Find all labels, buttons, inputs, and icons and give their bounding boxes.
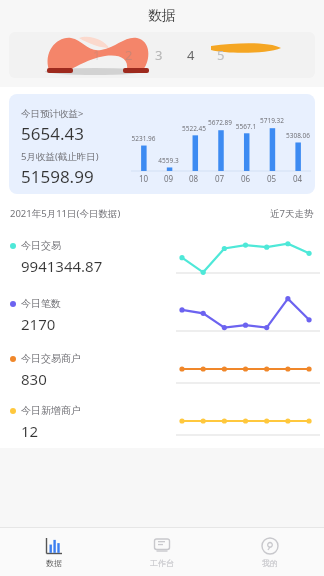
staticText: 4559.3 [156, 156, 181, 165]
staticText: 09 [164, 173, 174, 184]
button[interactable]: 数据 [0, 528, 108, 576]
staticText: 5654.43 [21, 122, 84, 145]
button[interactable]: 今日交易 [0, 228, 324, 286]
staticText: 5672.89 [207, 118, 233, 127]
button[interactable]: 今日新增商户 [0, 396, 324, 448]
staticText: 今日笔数 [21, 297, 61, 310]
staticText: 2021年5月11日(今日数据) [10, 207, 121, 220]
staticText: 5月收益(截止昨日) [21, 150, 99, 163]
staticText: 5308.06 [285, 131, 311, 140]
staticText: 10 [139, 173, 149, 184]
staticText: 04 [293, 173, 303, 184]
button[interactable]: 工作台 [108, 528, 216, 576]
staticText: 05 [267, 173, 277, 184]
staticText: 工作台 [150, 558, 174, 568]
staticText: 4 [187, 46, 195, 64]
staticText: 5231.96 [131, 134, 156, 143]
staticText: 5719.32 [259, 116, 285, 125]
staticText: 07 [215, 173, 225, 184]
staticText: 今日预计收益> [21, 107, 84, 120]
staticText: 3 [155, 46, 163, 64]
staticText: 今日交易 [21, 239, 61, 252]
staticText: 08 [189, 173, 199, 184]
staticText: 2 [125, 46, 133, 64]
button[interactable]: 今日笔数 [0, 286, 324, 344]
staticText: 今日交易商户 [21, 352, 81, 365]
staticText: 近7天走势 [270, 207, 314, 220]
button[interactable]: Promo banner [9, 32, 315, 78]
button[interactable]: 今日预计收益> [9, 94, 315, 194]
staticText: 5522.45 [181, 124, 207, 133]
staticText: 830 [21, 369, 47, 389]
staticText: 今日新增商户 [21, 404, 81, 417]
staticText: 我的 [262, 558, 278, 568]
staticText: 数据 [148, 7, 176, 25]
staticText: 06 [241, 173, 251, 184]
staticText: 9941344.87 [21, 256, 103, 276]
staticText: 12 [21, 421, 39, 441]
staticText: 5 [217, 46, 225, 64]
staticText: 数据 [46, 558, 62, 568]
staticText: 51598.99 [21, 165, 94, 188]
button[interactable]: 今日交易商户 [0, 344, 324, 396]
staticText: 5567.1 [233, 122, 259, 131]
staticText: 1 [93, 46, 101, 64]
staticText: 2170 [21, 314, 56, 334]
button[interactable]: 我的 [216, 528, 324, 576]
